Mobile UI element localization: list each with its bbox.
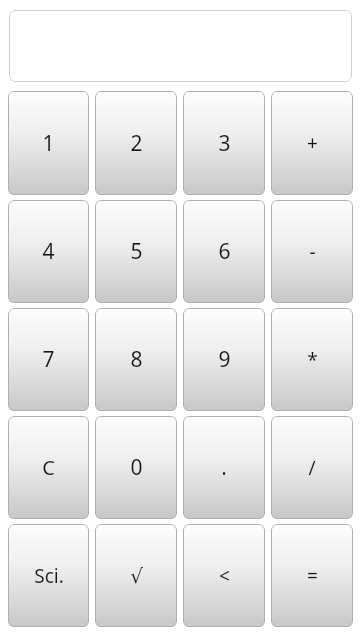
- staticText: 1: [42, 129, 55, 158]
- staticText: /: [308, 455, 316, 481]
- button[interactable]: /: [271, 416, 353, 519]
- staticText: .: [221, 453, 227, 482]
- button[interactable]: -: [271, 200, 353, 303]
- staticText: 7: [42, 345, 55, 374]
- staticText: 0: [130, 453, 143, 482]
- staticText: √: [130, 564, 143, 587]
- button[interactable]: 4: [8, 200, 89, 303]
- button[interactable]: <: [183, 524, 265, 627]
- button[interactable]: .: [183, 416, 265, 519]
- button[interactable]: 8: [95, 308, 177, 411]
- staticText: =: [307, 563, 318, 589]
- button[interactable]: 5: [95, 200, 177, 303]
- staticText: *: [307, 347, 318, 373]
- staticText: 2: [130, 129, 143, 158]
- button[interactable]: 7: [8, 308, 89, 411]
- staticText: 8: [130, 345, 143, 374]
- button[interactable]: =: [271, 524, 353, 627]
- button[interactable]: Display: [9, 10, 352, 82]
- staticText: C: [42, 454, 55, 481]
- button[interactable]: *: [271, 308, 353, 411]
- staticText: <: [219, 563, 230, 589]
- button[interactable]: 3: [183, 91, 265, 195]
- staticText: 6: [218, 237, 231, 266]
- button[interactable]: Sci.: [8, 524, 89, 627]
- button[interactable]: C: [8, 416, 89, 519]
- staticText: 5: [130, 237, 143, 266]
- staticText: 9: [218, 345, 231, 374]
- button[interactable]: 2: [95, 91, 177, 195]
- staticText: 4: [42, 237, 55, 266]
- button[interactable]: 1: [8, 91, 89, 195]
- staticText: +: [307, 130, 318, 156]
- button[interactable]: 9: [183, 308, 265, 411]
- staticText: Sci.: [34, 563, 64, 589]
- button[interactable]: 0: [95, 416, 177, 519]
- button[interactable]: +: [271, 91, 353, 195]
- button[interactable]: √: [95, 524, 177, 627]
- staticText: -: [309, 239, 316, 265]
- staticText: 3: [218, 129, 231, 158]
- button[interactable]: 6: [183, 200, 265, 303]
